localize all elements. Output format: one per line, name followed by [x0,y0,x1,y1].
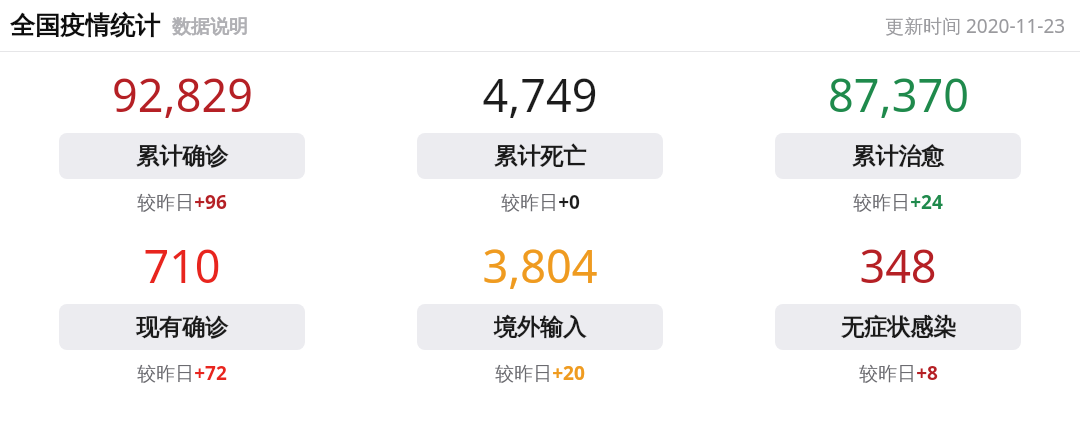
button[interactable]: 4,749 [417,64,663,215]
staticText: 累计治愈 [852,142,944,171]
staticText: 710 [143,235,221,296]
button[interactable]: 87,370 [775,64,1021,215]
staticText: 累计确诊 [136,142,228,171]
staticText: 87,370 [828,64,969,125]
staticText: 数据说明 [172,15,248,39]
button[interactable]: 92,829 [59,64,305,215]
staticText: 无症状感染 [841,313,956,342]
staticText: 累计死亡 [494,142,586,171]
staticText: 4,749 [482,64,598,125]
staticText: 92,829 [112,64,253,125]
staticText: 境外输入 [494,313,586,342]
staticText: 更新时间 2020-11-23 [885,13,1066,39]
button[interactable]: 3,804 [417,235,663,386]
button[interactable]: 348 [775,235,1021,386]
button[interactable]: 全国疫情统计 [10,10,248,41]
staticText: 现有确诊 [136,313,228,342]
staticText: 较昨日+72 [137,360,227,386]
staticText: 较昨日+8 [859,360,938,386]
staticText: 较昨日+0 [501,189,580,215]
staticText: 3,804 [482,235,598,296]
staticText: 348 [859,235,937,296]
staticText: 全国疫情统计 [10,10,160,41]
button[interactable]: 710 [59,235,305,386]
staticText: 较昨日+96 [137,189,227,215]
staticText: 较昨日+20 [495,360,585,386]
staticText: 较昨日+24 [853,189,943,215]
